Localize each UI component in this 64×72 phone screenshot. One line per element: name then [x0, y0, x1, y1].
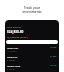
staticText: +2.4%	[50, 46, 57, 49]
staticText: investments	[0, 10, 64, 14]
button[interactable]: Tesla Inc.	[7, 55, 57, 64]
staticText: +1.8%	[50, 55, 57, 58]
staticText: $24,830.50	[7, 30, 24, 34]
button[interactable]	[6, 40, 58, 44]
staticText: 12 shares	[7, 50, 17, 53]
staticText: 5 shares	[7, 68, 16, 71]
button[interactable]: Nvidia Corp	[7, 64, 57, 72]
staticText: +3.1%	[50, 64, 57, 67]
staticText: +$1,240.20 (5.2%)	[7, 35, 28, 38]
staticText: Tesla Inc.	[7, 55, 18, 58]
staticText: Total balance	[7, 26, 22, 29]
staticText: 8 shares	[7, 59, 16, 62]
staticText: Nvidia Corp	[7, 64, 21, 67]
button[interactable]: Apple Inc.	[7, 46, 57, 55]
staticText: Apple Inc.	[7, 46, 19, 49]
staticText: Track your	[0, 6, 64, 10]
